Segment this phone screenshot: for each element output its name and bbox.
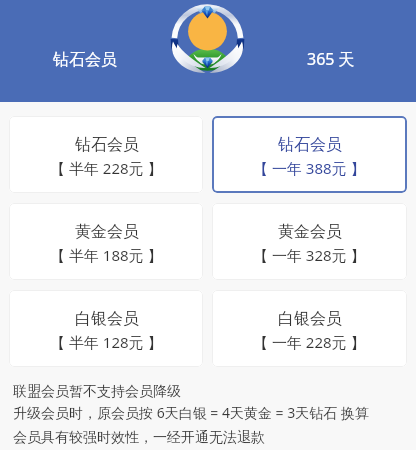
staticText: 钻石会员 bbox=[278, 135, 342, 155]
button[interactable]: 白银会员 bbox=[9, 290, 203, 367]
staticText: 黄金会员 bbox=[75, 222, 139, 242]
staticText: 升级会员时，原会员按 6天白银 = 4天黄金 = 3天钻石 换算 bbox=[13, 403, 369, 422]
staticText: 【 一年 388元 】 bbox=[253, 158, 366, 178]
button[interactable]: 钻石会员 bbox=[30, 45, 140, 75]
button[interactable]: 白银会员 bbox=[212, 290, 407, 367]
staticText: 【 半年 228元 】 bbox=[50, 158, 163, 178]
button[interactable]: 黄金会员 bbox=[212, 203, 407, 280]
staticText: 会员具有较强时效性，一经开通无法退款 bbox=[13, 429, 265, 447]
staticText: 钻石会员 bbox=[75, 135, 139, 155]
staticText: 【 半年 188元 】 bbox=[50, 245, 163, 265]
other: Diamond membership badge bbox=[167, 0, 251, 84]
staticText: 365 天 bbox=[307, 48, 355, 70]
staticText: 黄金会员 bbox=[278, 222, 342, 242]
staticText: 联盟会员暂不支持会员降级 bbox=[13, 383, 181, 401]
button[interactable]: 黄金会员 bbox=[9, 203, 203, 280]
staticText: 白银会员 bbox=[278, 309, 342, 329]
staticText: 【 一年 228元 】 bbox=[253, 332, 366, 352]
staticText: 【 一年 328元 】 bbox=[253, 245, 366, 265]
button[interactable]: 钻石会员 bbox=[212, 116, 407, 193]
staticText: 白银会员 bbox=[75, 309, 139, 329]
button[interactable]: 365 天 bbox=[276, 44, 386, 74]
button[interactable]: 钻石会员 bbox=[9, 116, 203, 193]
staticText: 【 半年 128元 】 bbox=[50, 332, 163, 352]
staticText: 钻石会员 bbox=[53, 50, 117, 70]
